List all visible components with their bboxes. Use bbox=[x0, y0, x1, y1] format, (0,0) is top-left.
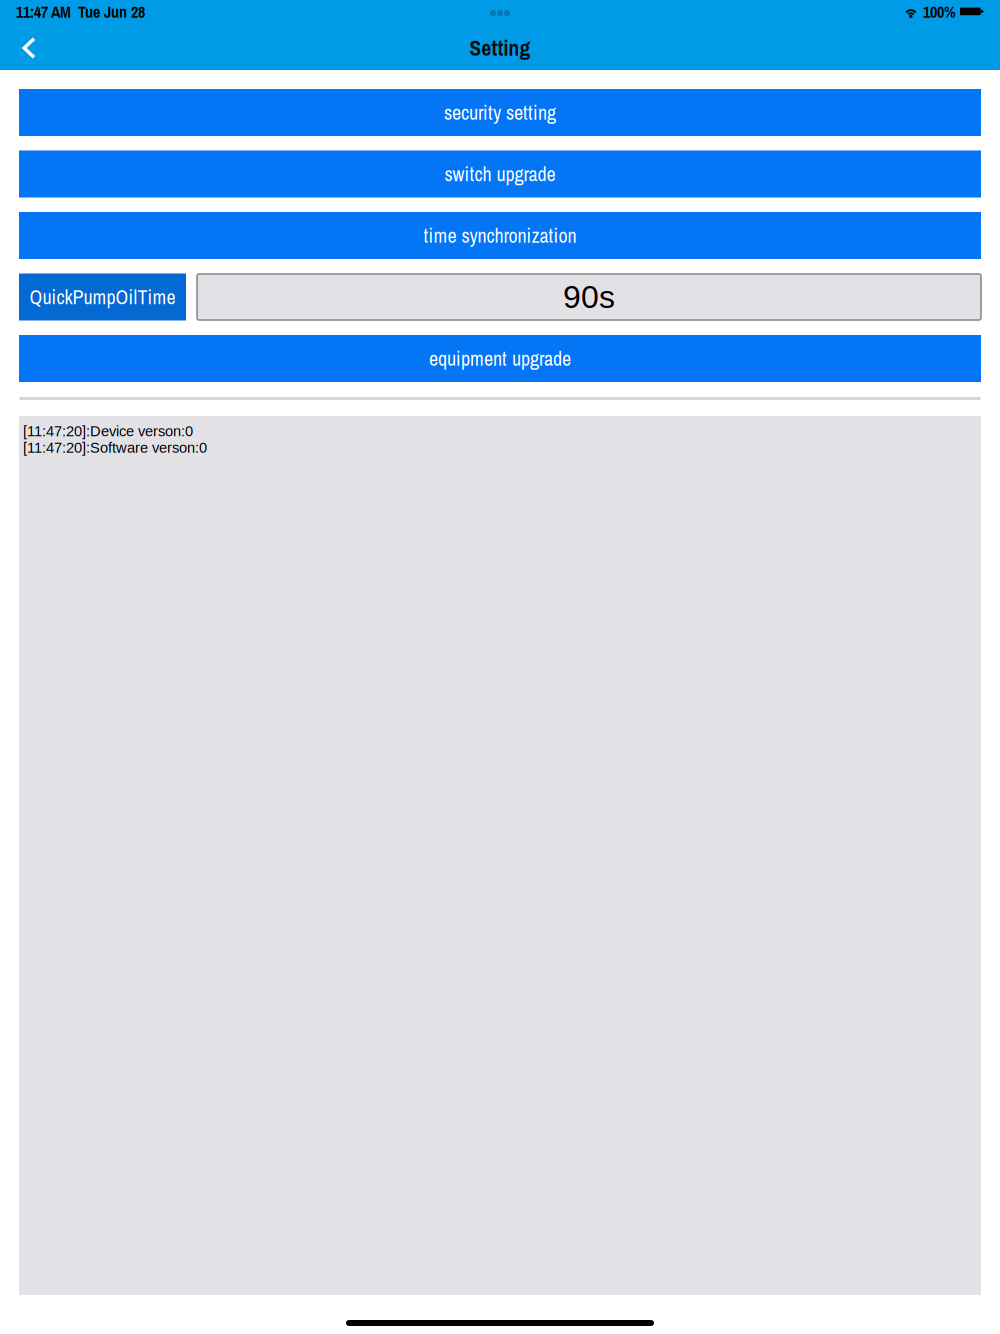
staticText: Tue Jun 28 bbox=[78, 1, 145, 23]
button[interactable]: 90s bbox=[197, 274, 981, 320]
button[interactable]: time synchronization bbox=[19, 212, 981, 259]
staticText: QuickPumpOilTime bbox=[29, 283, 175, 310]
staticText: switch upgrade bbox=[444, 160, 555, 187]
button[interactable]: equipment upgrade bbox=[19, 335, 981, 382]
staticText: [11:47:20]:Device verson:0 bbox=[23, 423, 193, 439]
button[interactable]: Back bbox=[7, 26, 51, 70]
staticText: security setting bbox=[444, 99, 556, 126]
staticText: Setting bbox=[469, 34, 530, 62]
staticText: 11:47 AM bbox=[16, 1, 71, 23]
staticText: 90s bbox=[563, 279, 615, 315]
button[interactable]: switch upgrade bbox=[19, 150, 981, 197]
staticText: time synchronization bbox=[423, 222, 576, 249]
staticText: 100% bbox=[923, 1, 956, 23]
staticText: equipment upgrade bbox=[429, 345, 571, 372]
button[interactable]: security setting bbox=[19, 89, 981, 136]
button[interactable]: QuickPumpOilTime bbox=[19, 273, 186, 320]
staticText: [11:47:20]:Software verson:0 bbox=[23, 439, 207, 456]
